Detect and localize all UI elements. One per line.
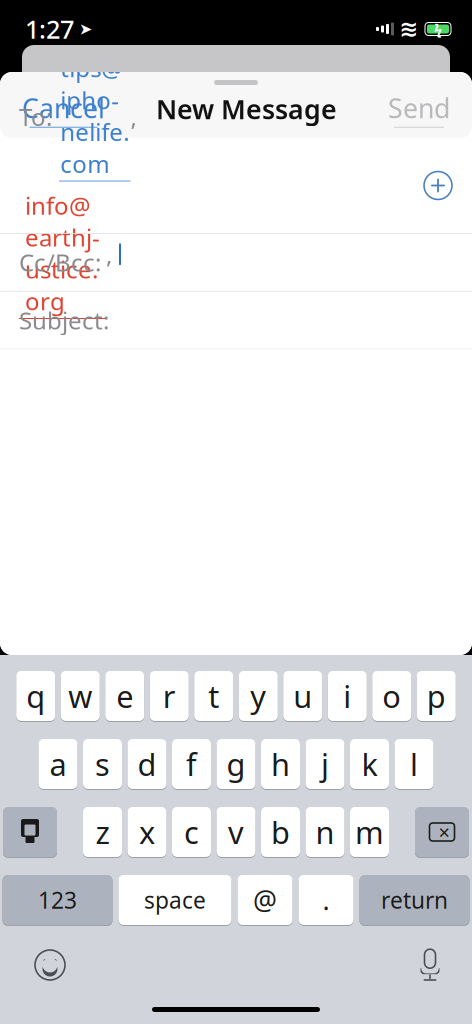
button[interactable]: d [127, 738, 166, 790]
staticText: o [382, 676, 401, 716]
button[interactable]: e [105, 670, 144, 722]
staticText: g [226, 744, 245, 784]
button[interactable]: s [83, 738, 122, 790]
staticText: w [68, 676, 92, 716]
button[interactable]: j [305, 738, 344, 790]
button[interactable]: o [372, 670, 411, 722]
staticText: To: [19, 101, 52, 133]
button[interactable]: b [261, 806, 300, 858]
staticText: v [228, 812, 244, 852]
button[interactable]: w [61, 670, 100, 722]
button[interactable]: k [350, 738, 389, 790]
staticText: 1:27 [25, 12, 74, 46]
staticText: , [106, 238, 112, 270]
staticText: m [355, 812, 384, 852]
staticText: tips@iphonelife.com [60, 52, 129, 179]
staticText: h [271, 744, 290, 784]
button[interactable]: a [38, 738, 77, 790]
staticText: @ [253, 882, 277, 918]
staticText: d [137, 744, 156, 784]
button[interactable]: Shift [3, 806, 57, 858]
staticText: e [116, 676, 133, 716]
button[interactable]: 123 [2, 874, 112, 926]
staticText: p [427, 676, 446, 716]
button[interactable]: y [239, 670, 278, 722]
button[interactable]: i [328, 670, 367, 722]
staticText: ➤ [79, 20, 92, 38]
button[interactable]: m [350, 806, 389, 858]
button[interactable]: Cancel [0, 80, 115, 138]
button[interactable]: u [283, 670, 322, 722]
button[interactable]: q [16, 670, 55, 722]
staticText: . [322, 882, 329, 918]
staticText: k [361, 744, 377, 784]
button[interactable]: space [118, 874, 231, 926]
button[interactable]: Send [378, 80, 472, 138]
staticText: ϟ [434, 19, 442, 39]
button[interactable]: Add contact [416, 163, 460, 207]
staticText: b [271, 812, 290, 852]
staticText: Cancel [22, 90, 105, 126]
staticText: x [139, 812, 155, 852]
button[interactable]: Delete [415, 806, 469, 858]
staticText: space [144, 885, 206, 915]
button[interactable]: f [172, 738, 211, 790]
staticText: × [438, 819, 449, 845]
staticText: return [381, 885, 448, 915]
staticText: info@earthjustice.org [25, 189, 100, 317]
staticText: q [26, 676, 45, 716]
staticText: c [184, 812, 199, 852]
button[interactable]: p [417, 670, 456, 722]
staticText: t [208, 676, 219, 716]
staticText: n [315, 812, 334, 852]
staticText: j [321, 744, 329, 784]
staticText: , [130, 101, 136, 133]
staticText: y [250, 676, 266, 716]
staticText: 123 [38, 885, 77, 915]
button[interactable]: g [216, 738, 255, 790]
button[interactable]: Dictate [415, 948, 445, 982]
staticText: a [49, 744, 66, 784]
button[interactable]: t [194, 670, 233, 722]
staticText: z [95, 812, 109, 852]
button[interactable]: Emoji [33, 948, 67, 982]
staticText: Send [388, 90, 450, 126]
staticText: l [410, 744, 418, 784]
button[interactable]: return [359, 874, 469, 926]
staticText: u [293, 676, 312, 716]
staticText: s [95, 744, 110, 784]
staticText: ≋ [399, 16, 418, 42]
button[interactable]: c [172, 806, 211, 858]
button[interactable]: x [127, 806, 166, 858]
staticText: Subject: [19, 304, 109, 336]
staticText: r [163, 676, 176, 716]
staticText: New Message [156, 91, 337, 127]
button[interactable]: n [305, 806, 344, 858]
button[interactable]: z [83, 806, 122, 858]
button[interactable]: . [298, 874, 353, 926]
button[interactable]: r [150, 670, 189, 722]
staticText: i [343, 676, 351, 716]
staticText: Cc/Bcc: [19, 246, 101, 278]
button[interactable]: @ [237, 874, 292, 926]
button[interactable]: v [216, 806, 255, 858]
button[interactable]: l [394, 738, 433, 790]
staticText: f [186, 744, 197, 784]
button[interactable]: h [261, 738, 300, 790]
